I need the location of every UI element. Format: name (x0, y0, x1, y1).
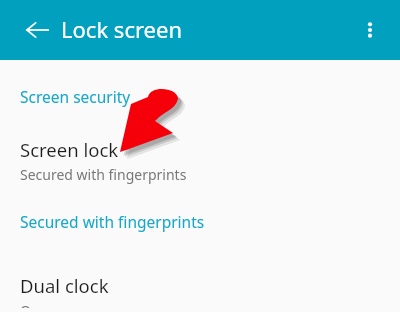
staticText: Lock screen (61, 14, 183, 44)
button[interactable]: Screen lock (0, 133, 400, 188)
staticText: Screen security (20, 86, 131, 107)
staticText: Secured with fingerprints (20, 211, 205, 232)
staticText: Screen lock (20, 137, 119, 162)
button[interactable]: Screen security (0, 86, 400, 107)
button[interactable]: Dual clock (0, 269, 400, 312)
button[interactable]: More options (346, 6, 394, 54)
button[interactable]: Secured with fingerprints (0, 211, 400, 232)
staticText: Secured with fingerprints (20, 165, 187, 184)
button[interactable]: Navigate up (15, 8, 59, 52)
staticText: Dual clock (20, 273, 109, 298)
staticText: On (20, 301, 40, 308)
